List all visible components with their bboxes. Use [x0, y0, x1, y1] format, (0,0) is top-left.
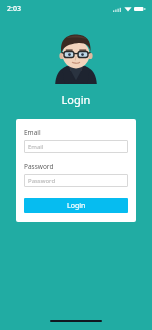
staticText: Email — [28, 143, 44, 151]
staticText: Password — [24, 162, 54, 171]
staticText: 2:03 — [7, 4, 21, 14]
staticText: Password — [28, 177, 56, 185]
staticText: Login — [0, 92, 152, 107]
other: User avatar — [50, 32, 102, 84]
button[interactable]: Login — [24, 198, 128, 213]
staticText: Email — [24, 128, 41, 137]
staticText: Login — [67, 201, 86, 211]
button[interactable]: Password — [24, 174, 128, 187]
button[interactable]: Email — [24, 140, 128, 153]
